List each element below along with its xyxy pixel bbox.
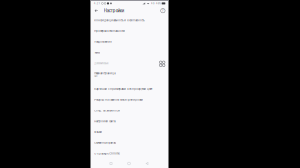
staticText: Спец. возможности (94, 109, 120, 112)
button[interactable]: Конфиденциальность и безопасность (90, 15, 168, 26)
button[interactable]: Главный экран (123, 159, 135, 168)
button[interactable]: Ресурсы на главном месте тренировки (90, 94, 168, 105)
button[interactable]: Темы (90, 47, 168, 58)
button[interactable]: Настройки сайта (90, 116, 168, 127)
button[interactable]: Назад (141, 159, 153, 168)
staticText: Конфиденциальность и безопасность (94, 19, 144, 22)
staticText: Настройки (104, 8, 124, 13)
staticText: Дополнительно (94, 62, 108, 65)
button[interactable]: Дополнительно (90, 58, 168, 69)
staticText: 4:21 (94, 2, 100, 5)
staticText: ? (162, 9, 164, 12)
button[interactable]: Проверка безопасности (90, 26, 168, 37)
staticText: Картинки с примерами без прокрутки цвет (94, 87, 152, 91)
button[interactable]: Назад (93, 6, 100, 15)
button[interactable]: Уведомления (90, 36, 168, 47)
staticText: Главная страница (94, 72, 115, 75)
button[interactable]: Спец. возможности (90, 105, 168, 116)
staticText: Вкл (94, 75, 97, 78)
staticText: Языки (94, 130, 102, 134)
staticText: Уведомления (94, 40, 111, 43)
staticText: Ресурсы на главном месте тренировки (94, 98, 143, 101)
staticText: Настройки сайта (94, 120, 115, 123)
staticText: Темы (94, 51, 100, 54)
staticText: О браузере Chrome (94, 152, 119, 155)
staticText: Скачанные файлы (94, 141, 116, 144)
button[interactable]: Обзор (105, 159, 117, 168)
staticText: 4G 46% (151, 2, 161, 5)
button[interactable]: Главная страница (90, 69, 168, 84)
button[interactable]: Скачанные файлы (90, 137, 168, 148)
staticText: Проверка безопасности (94, 30, 125, 33)
button[interactable]: Справка (159, 6, 167, 15)
button[interactable]: Картинки с примерами без прокрутки цвет (90, 84, 168, 94)
button[interactable]: Языки (90, 127, 168, 137)
button[interactable]: О браузере Chrome (90, 148, 168, 159)
